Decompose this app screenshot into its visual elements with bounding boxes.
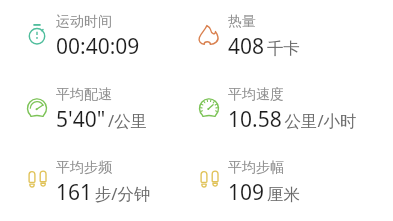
- staticText: 161 步/分钟: [56, 178, 151, 207]
- staticText: 平均步频: [56, 159, 112, 177]
- button[interactable]: 平均速度: [196, 73, 393, 146]
- button[interactable]: 平均步幅: [196, 146, 393, 219]
- staticText: 408 千卡: [228, 32, 300, 61]
- staticText: 5'40" /公里: [56, 105, 148, 134]
- staticText: 00:40:09: [56, 32, 140, 61]
- button[interactable]: 平均步频: [0, 146, 196, 219]
- staticText: 平均配速: [56, 86, 112, 104]
- staticText: 热量: [228, 13, 256, 31]
- staticText: 平均步幅: [228, 159, 284, 177]
- staticText: 10.58 公里/小时: [228, 105, 357, 134]
- staticText: 平均速度: [228, 86, 284, 104]
- button[interactable]: 运动时间: [0, 0, 196, 73]
- button[interactable]: 热量: [196, 0, 393, 73]
- staticText: 109 厘米: [228, 178, 300, 207]
- staticText: 运动时间: [56, 13, 112, 31]
- button[interactable]: 平均配速: [0, 73, 196, 146]
